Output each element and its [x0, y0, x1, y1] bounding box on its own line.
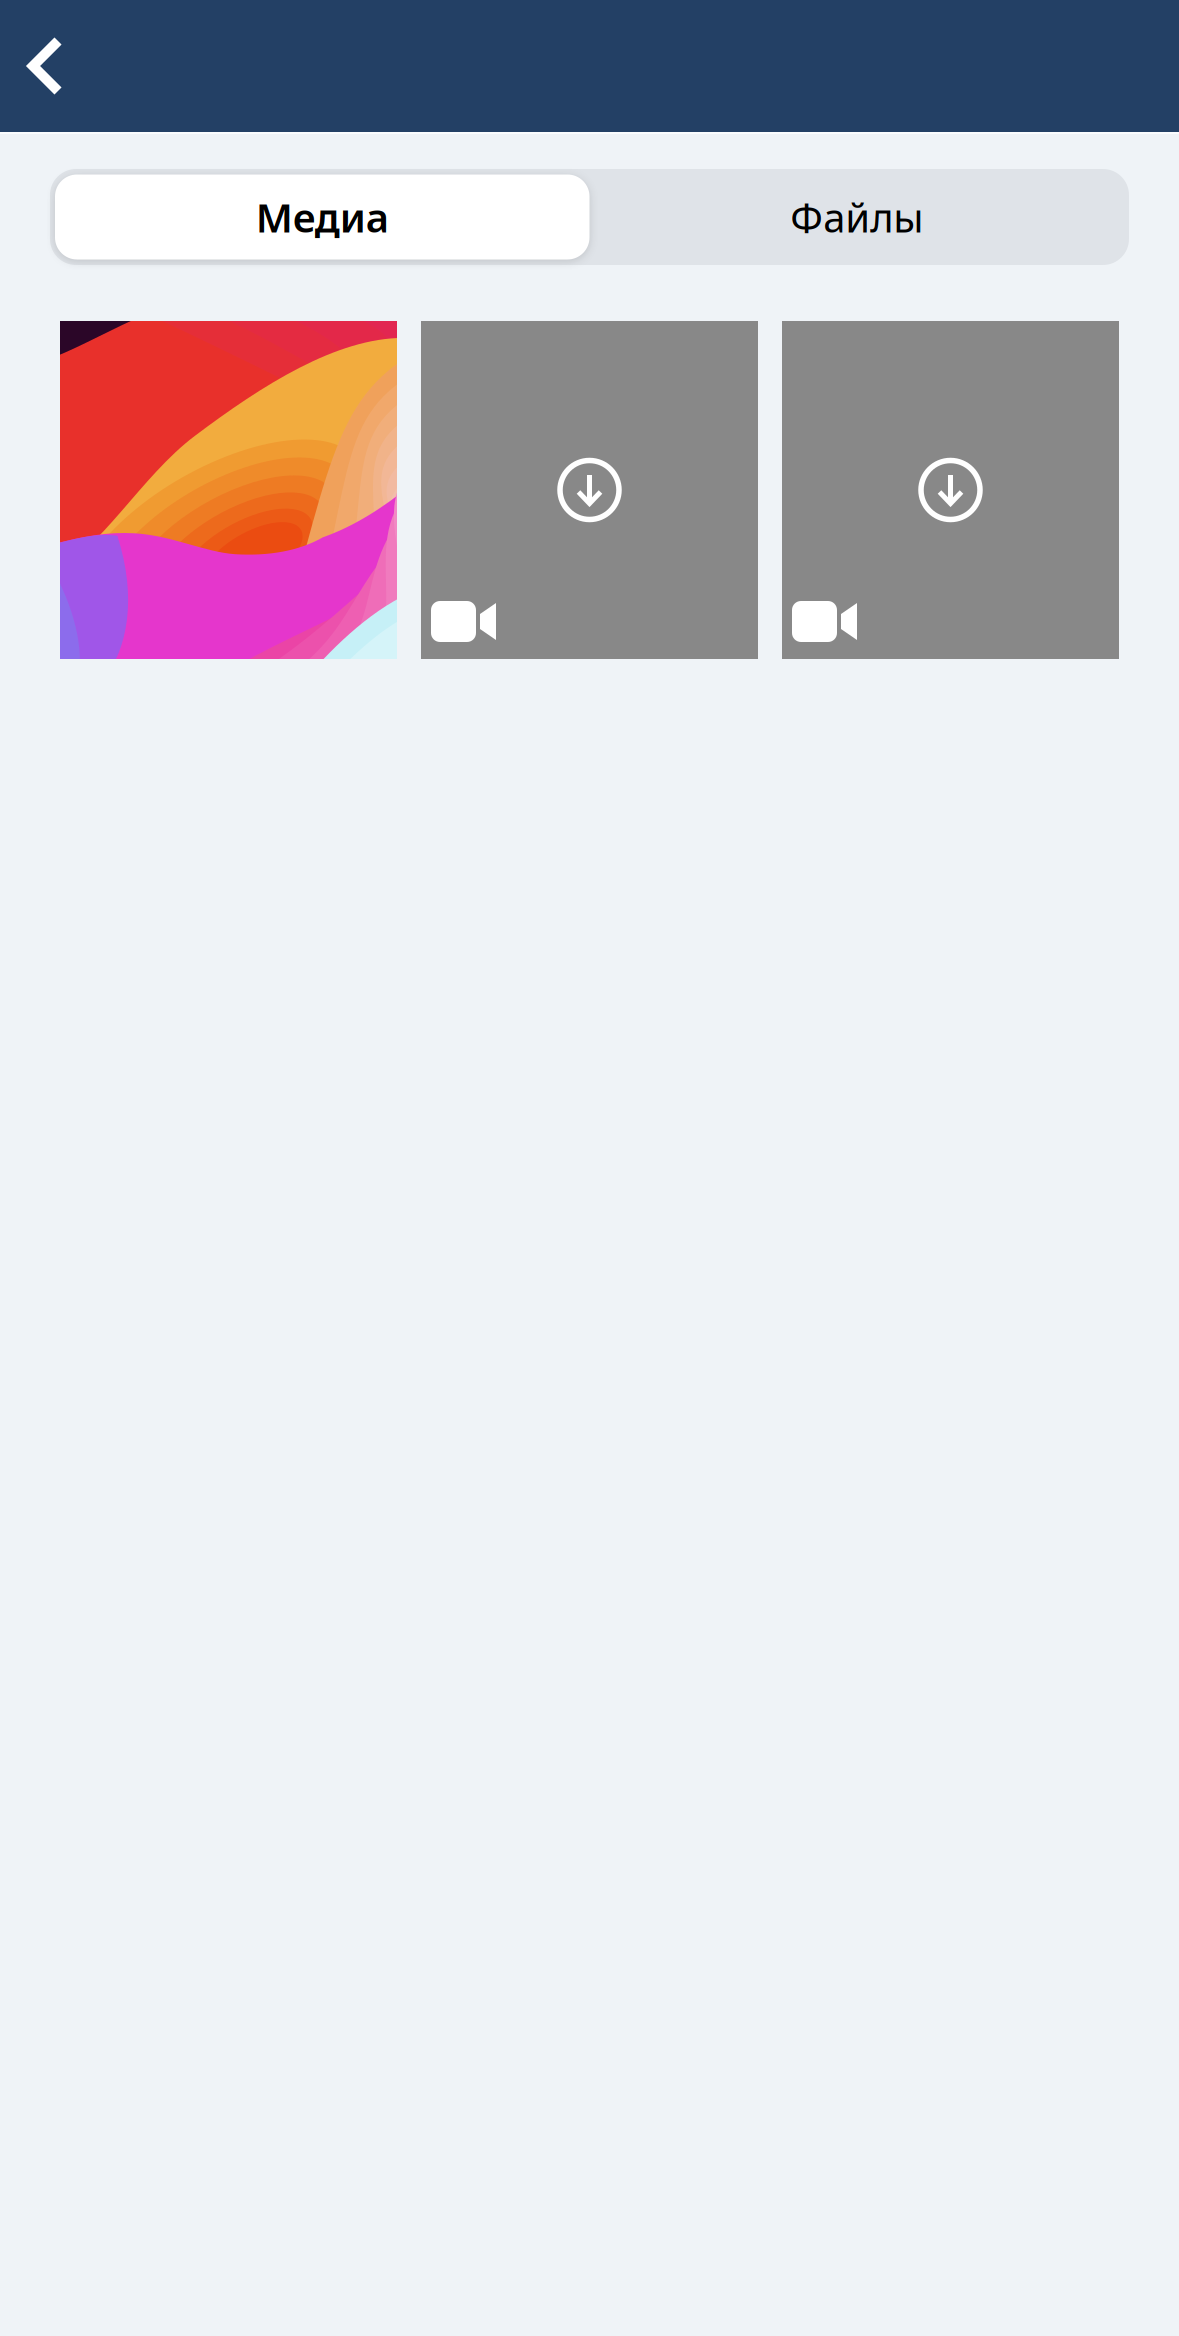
button[interactable]: Video, tap to download — [782, 321, 1119, 659]
button[interactable]: Back — [0, 0, 110, 132]
staticText: Медиа — [256, 190, 389, 243]
button[interactable]: Файлы — [589, 174, 1124, 259]
button[interactable]: Медиа — [55, 174, 589, 259]
button[interactable]: Photo — [60, 321, 397, 659]
button[interactable]: Video, tap to download — [421, 321, 758, 659]
staticText: Файлы — [790, 190, 923, 243]
